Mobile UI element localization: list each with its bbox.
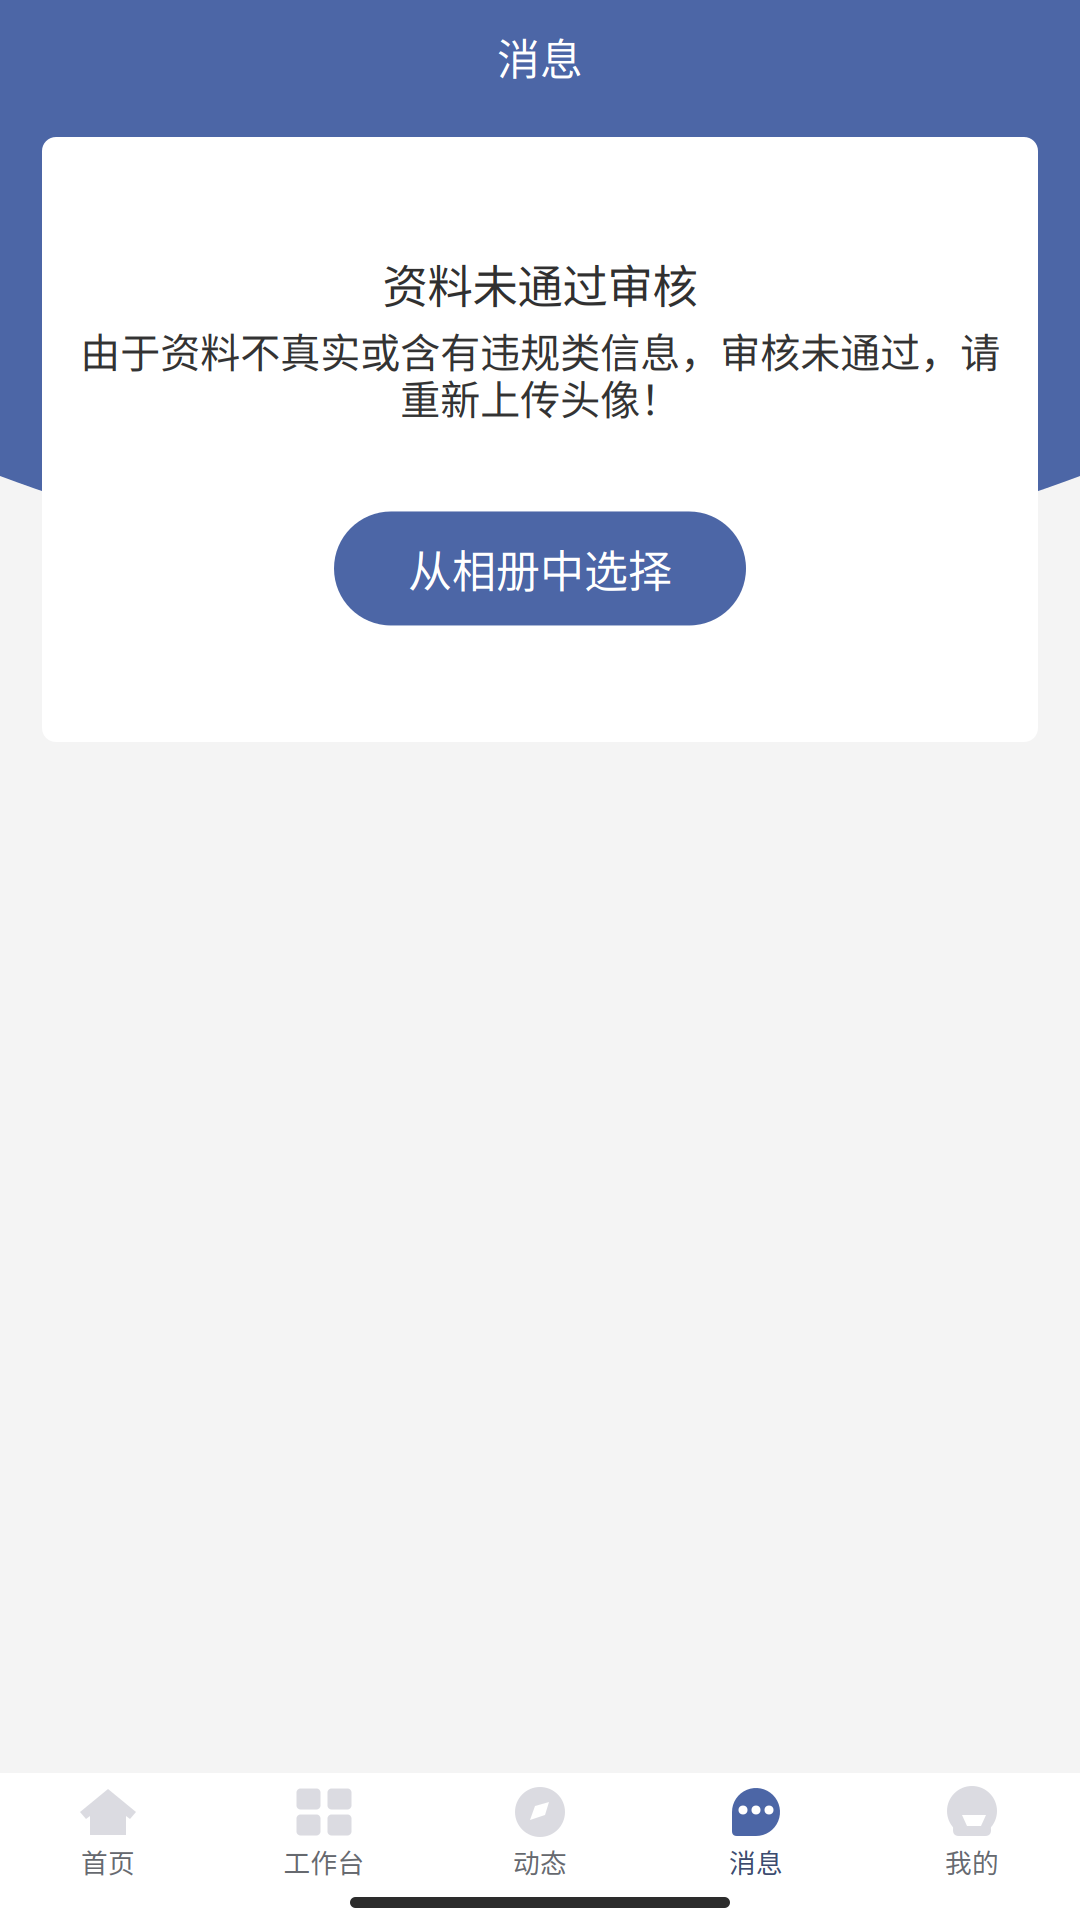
staticText: 消息 [497, 26, 583, 88]
button[interactable]: 从相册中选择 [334, 511, 746, 625]
button[interactable]: 我的 [864, 1788, 1080, 1881]
button[interactable]: 工作台 [216, 1788, 432, 1881]
staticText: 消息 [729, 1842, 783, 1881]
staticText: 工作台 [283, 1842, 364, 1881]
staticText: 由于资料不真实或含有违规类信息，审核未通过，请重新上传头像！ [80, 327, 1000, 420]
button[interactable]: 动态 [432, 1788, 648, 1881]
staticText: 首页 [81, 1842, 135, 1881]
staticText: 动态 [513, 1842, 567, 1881]
button[interactable]: 首页 [0, 1788, 216, 1881]
button[interactable]: 消息 [648, 1788, 864, 1881]
staticText: 我的 [945, 1842, 999, 1881]
staticText: 资料未通过审核 [382, 251, 697, 317]
staticText: 从相册中选择 [408, 537, 672, 600]
